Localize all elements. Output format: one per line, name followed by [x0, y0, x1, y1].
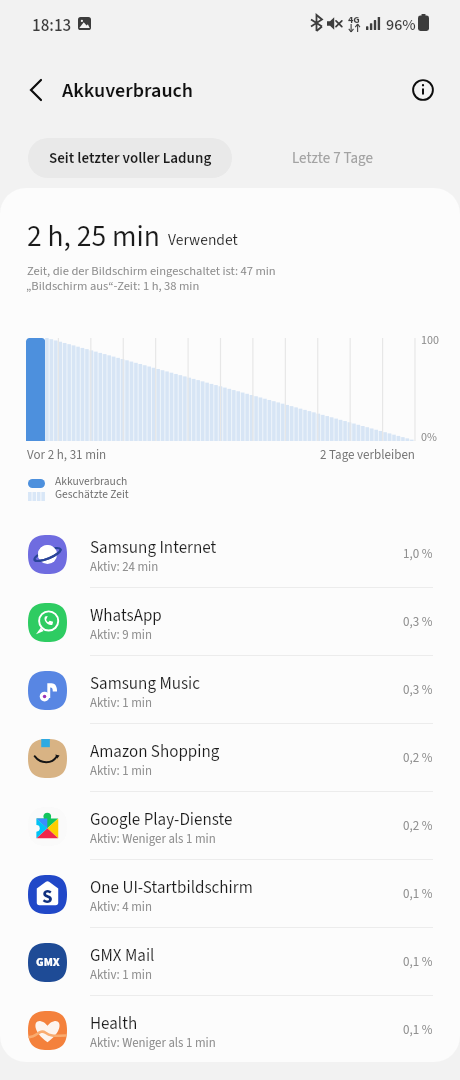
staticText: Samsung Internet	[90, 536, 217, 560]
staticText: Aktiv: 1 min	[90, 762, 152, 780]
staticText: Aktiv: 24 min	[90, 558, 159, 576]
button[interactable]: Zurück	[12, 66, 60, 114]
staticText: Aktiv: Weniger als 1 min	[90, 1034, 216, 1052]
staticText: Aktiv: Weniger als 1 min	[90, 830, 216, 848]
staticText: 0,1 %	[403, 953, 433, 972]
button[interactable]: Amazon Shopping	[0, 724, 460, 792]
staticText: 100	[421, 332, 439, 349]
staticText: 96%	[386, 14, 416, 37]
staticText: 1,0 %	[403, 545, 433, 564]
staticText: Amazon Shopping	[90, 740, 220, 764]
staticText: Vor 2 h, 31 min	[27, 446, 107, 465]
button[interactable]: GMX	[0, 928, 460, 996]
staticText: S	[42, 884, 53, 911]
staticText: Verwendet	[168, 229, 238, 251]
staticText: 2 h, 25 min	[27, 216, 160, 258]
staticText: Akkuverbrauch	[62, 77, 194, 105]
staticText: GMX Mail	[90, 944, 155, 968]
staticText: 0,1 %	[403, 1021, 433, 1040]
staticText: 0%	[421, 429, 437, 446]
staticText: 0,1 %	[403, 885, 433, 904]
staticText: Samsung Music	[90, 672, 201, 696]
staticText: Zeit, die der Bildschirm eingeschaltet i…	[27, 262, 276, 280]
staticText: 0,2 %	[403, 817, 433, 836]
button[interactable]: S	[0, 860, 460, 928]
staticText: 0,3 %	[403, 613, 433, 632]
staticText: Letzte 7 Tage	[292, 148, 373, 169]
button[interactable]: Seit letzter voller Ladung	[28, 138, 232, 178]
staticText: GMX	[36, 954, 60, 971]
button[interactable]: Google Play-Dienste	[0, 792, 460, 860]
staticText: „Bildschirm aus“-Zeit: 1 h, 38 min	[26, 277, 200, 295]
staticText: Aktiv: 1 min	[90, 694, 152, 712]
staticText: Geschätzte Zeit	[55, 486, 129, 502]
staticText: 18:13	[32, 14, 72, 38]
staticText: Seit letzter voller Ladung	[49, 148, 212, 169]
staticText: Google Play-Dienste	[90, 808, 233, 832]
button[interactable]: Samsung Internet	[0, 520, 460, 588]
staticText: Health	[90, 1012, 138, 1036]
button[interactable]: Letzte 7 Tage	[230, 138, 434, 178]
staticText: 0,2 %	[403, 749, 433, 768]
button[interactable]: Health	[0, 996, 460, 1062]
staticText: 0,3 %	[403, 681, 433, 700]
staticText: WhatsApp	[90, 604, 162, 628]
staticText: Aktiv: 9 min	[90, 626, 152, 644]
staticText: Aktiv: 1 min	[90, 966, 152, 984]
staticText: Aktiv: 4 min	[90, 898, 152, 916]
staticText: One UI-Startbildschirm	[90, 876, 253, 900]
staticText: 2 Tage verbleiben	[320, 446, 415, 465]
staticText: Akkuverbrauch	[55, 473, 128, 489]
button[interactable]: Informationen	[399, 66, 447, 114]
button[interactable]: Samsung Music	[0, 656, 460, 724]
button[interactable]: WhatsApp	[0, 588, 460, 656]
staticText: 4G	[348, 13, 360, 27]
